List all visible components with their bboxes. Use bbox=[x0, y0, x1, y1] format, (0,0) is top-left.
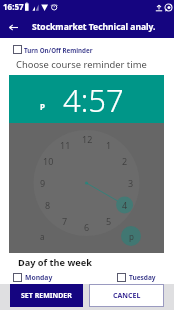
staticText: CANCEL bbox=[113, 291, 141, 301]
button[interactable]: CANCEL bbox=[89, 284, 164, 307]
staticText: Choose course reminder time bbox=[16, 58, 147, 71]
staticText: 8 bbox=[45, 199, 51, 211]
button[interactable]: 6 bbox=[78, 220, 96, 234]
button[interactable]: 2 bbox=[116, 154, 134, 168]
staticText: Monday bbox=[25, 273, 53, 282]
staticText: 9 bbox=[40, 177, 46, 189]
button[interactable]: SET REMINDER bbox=[10, 284, 83, 307]
button[interactable]: 3 bbox=[122, 176, 140, 190]
button[interactable]: 10 bbox=[39, 154, 57, 168]
button[interactable]: 5 bbox=[100, 214, 118, 228]
staticText: 7 bbox=[62, 215, 68, 227]
staticText: Stockmarket Technical analy. bbox=[32, 21, 156, 33]
button[interactable]: 8 bbox=[39, 198, 57, 212]
button[interactable]: p bbox=[125, 230, 137, 242]
staticText: p bbox=[129, 231, 134, 242]
staticText: 4:57 bbox=[63, 79, 124, 121]
staticText: Day of the week bbox=[18, 256, 92, 269]
button[interactable]: Back bbox=[2, 16, 24, 38]
button[interactable]: 4 bbox=[116, 198, 134, 212]
button[interactable]: 11 bbox=[56, 138, 74, 152]
button[interactable]: 1 bbox=[100, 138, 118, 152]
button[interactable]: Monday bbox=[13, 273, 53, 282]
button[interactable]: Tuesday bbox=[117, 273, 156, 282]
staticText: SET REMINDER bbox=[21, 291, 72, 301]
staticText: 16:57 bbox=[3, 1, 24, 12]
button[interactable]: a bbox=[36, 230, 48, 242]
staticText: a bbox=[40, 231, 45, 242]
staticText: 6 bbox=[84, 221, 90, 233]
staticText: 4 bbox=[122, 199, 128, 211]
button[interactable]: 7 bbox=[56, 214, 74, 228]
staticText: Tuesday bbox=[129, 273, 156, 282]
button[interactable]: Turn On/Off Reminder bbox=[13, 45, 93, 54]
staticText: 3 bbox=[128, 177, 134, 189]
staticText: 10 bbox=[43, 155, 54, 167]
button[interactable]: 12 bbox=[78, 132, 96, 146]
staticText: 2 bbox=[122, 155, 128, 167]
staticText: 12 bbox=[82, 133, 93, 145]
staticText: Turn On/Off Reminder bbox=[24, 46, 93, 54]
staticText: P bbox=[40, 101, 45, 112]
staticText: 1 bbox=[106, 139, 112, 151]
staticText: 5 bbox=[106, 215, 112, 227]
staticText: 11 bbox=[60, 139, 71, 151]
button[interactable]: 9 bbox=[34, 176, 52, 190]
